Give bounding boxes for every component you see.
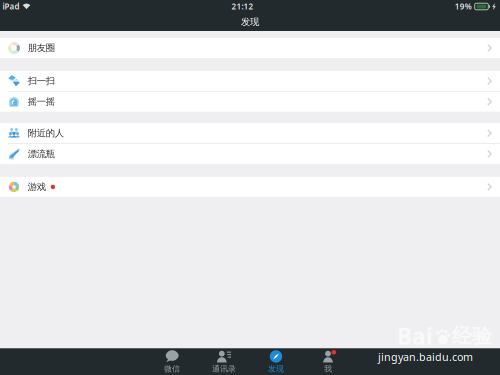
staticText: 朋友圈 xyxy=(28,42,55,54)
staticText: 通讯录 xyxy=(212,364,236,374)
button[interactable]: 附近的人 xyxy=(0,123,500,143)
staticText: 我 xyxy=(324,364,332,374)
button[interactable]: 发现 xyxy=(250,349,302,375)
button[interactable]: 我 xyxy=(302,349,354,375)
button[interactable]: 扫一扫 xyxy=(0,71,500,91)
staticText: 19% xyxy=(455,1,472,12)
staticText: iPad xyxy=(2,1,19,12)
staticText: 发现 xyxy=(241,16,259,28)
staticText: 发现 xyxy=(268,364,284,374)
staticText: 漂流瓶 xyxy=(28,148,55,160)
staticText: 微信 xyxy=(164,364,180,374)
button[interactable]: 微信 xyxy=(146,349,198,375)
button[interactable]: 通讯录 xyxy=(198,349,250,375)
staticText: 摇一摇 xyxy=(28,96,55,107)
button[interactable]: 朋友圈 xyxy=(0,38,500,58)
button[interactable]: 漂流瓶 xyxy=(0,144,500,164)
staticText: 附近的人 xyxy=(28,127,64,139)
staticText: 21:12 xyxy=(232,1,254,12)
staticText: 扫一扫 xyxy=(28,75,55,87)
button[interactable]: 摇一摇 xyxy=(0,92,500,112)
staticText: Bai xyxy=(397,321,433,351)
staticText: 经验 xyxy=(452,324,492,348)
button[interactable]: 游戏 xyxy=(0,177,500,197)
staticText: 游戏 xyxy=(28,181,46,193)
staticText: jingyan.baidu.com xyxy=(378,350,473,364)
